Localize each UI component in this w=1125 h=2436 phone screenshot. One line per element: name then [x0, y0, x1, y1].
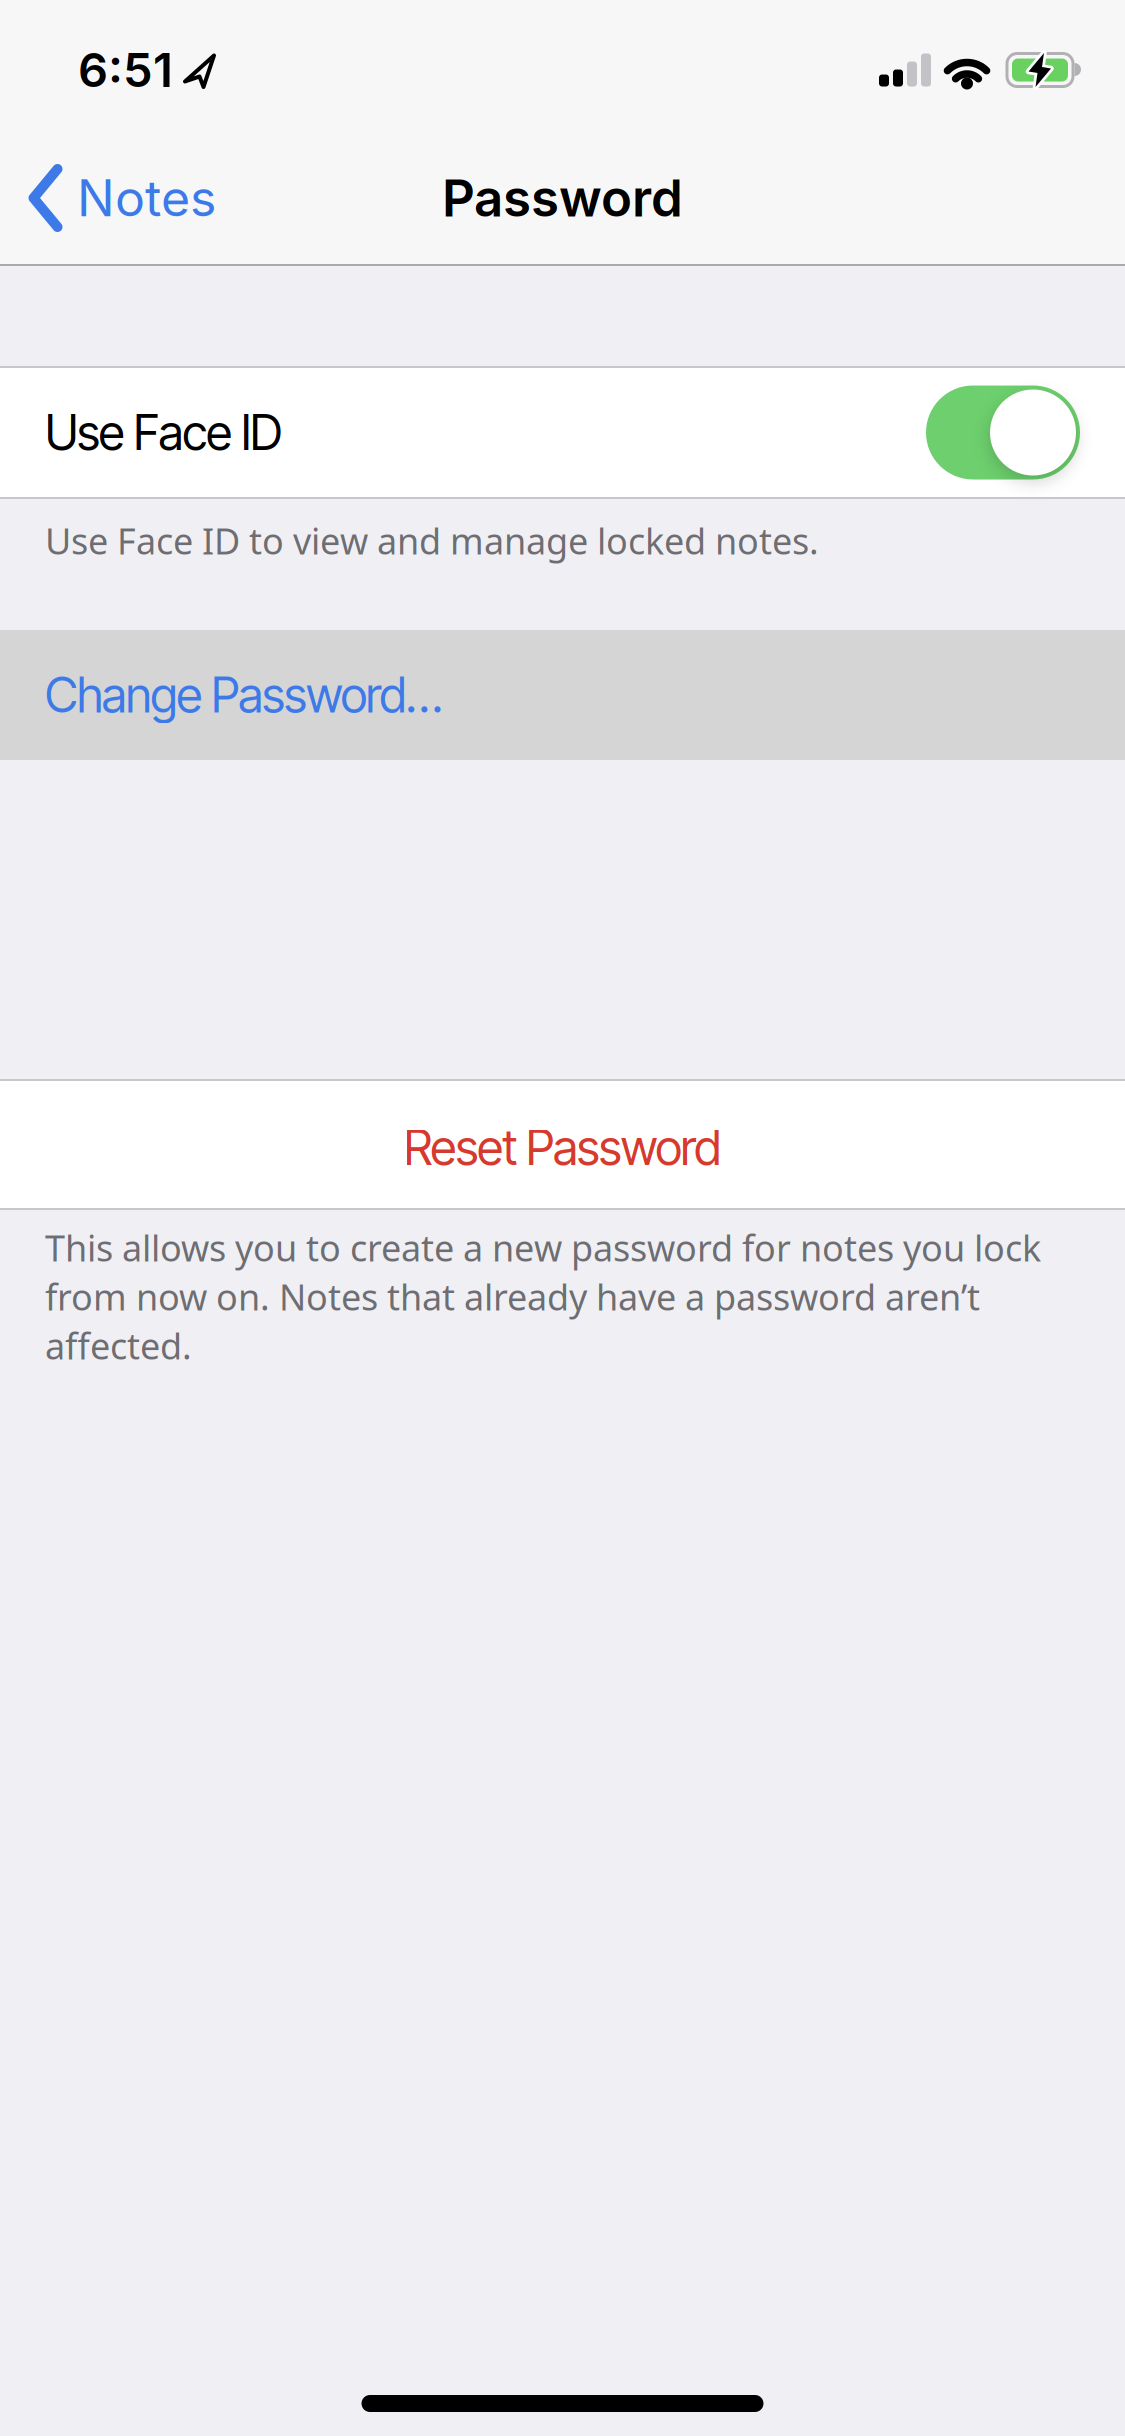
- button[interactable]: Reset Password: [0, 1081, 1125, 1208]
- button[interactable]: Notes: [0, 166, 216, 230]
- button[interactable]: [926, 385, 1080, 479]
- staticText: Use Face ID to view and manage locked no…: [45, 516, 819, 565]
- staticText: Change Password…: [45, 666, 442, 724]
- staticText: Notes: [77, 168, 216, 228]
- button[interactable]: Change Password…: [0, 630, 1125, 760]
- staticText: 6:51: [78, 42, 173, 98]
- staticText: Use Face ID: [45, 403, 282, 462]
- staticText: Reset Password: [404, 1118, 721, 1177]
- staticText: This allows you to create a new password…: [45, 1223, 1041, 1370]
- staticText: Password: [442, 167, 683, 229]
